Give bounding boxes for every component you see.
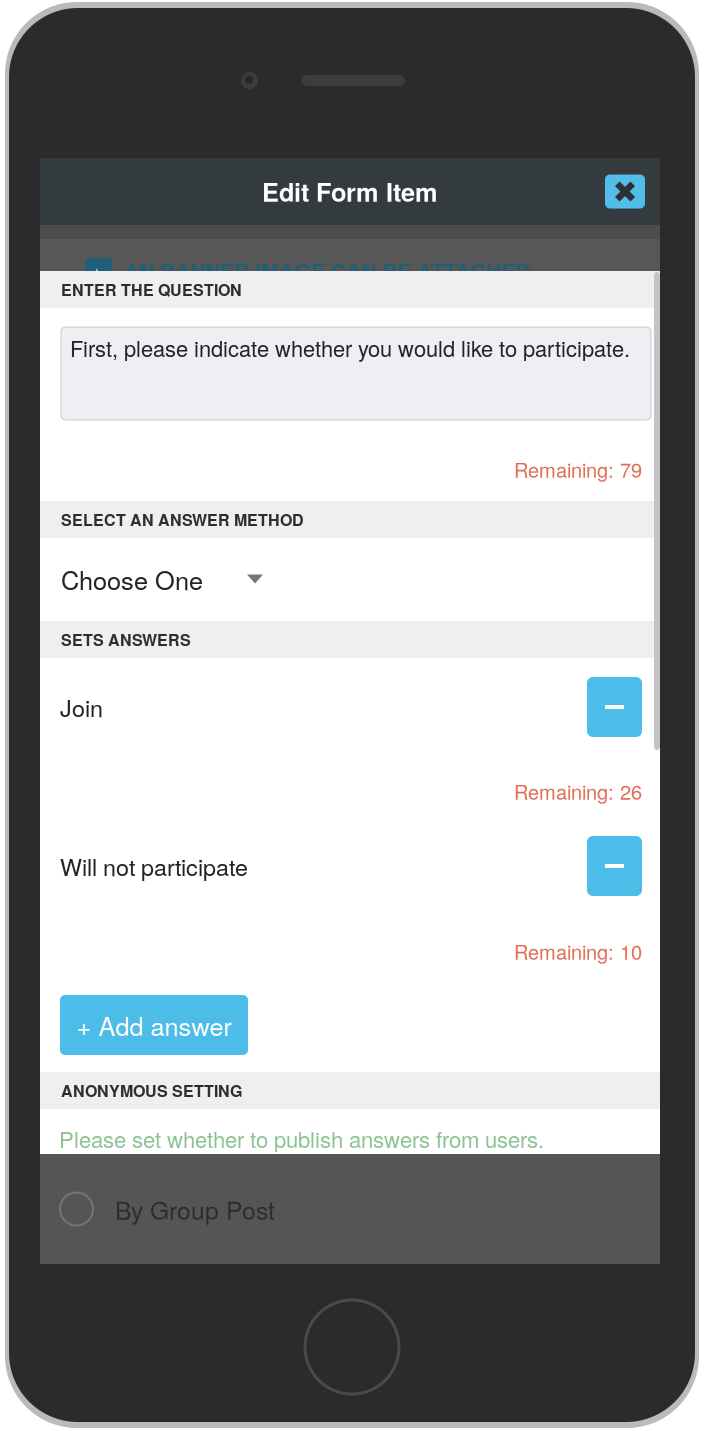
staticText: Remaining: 10 bbox=[514, 937, 642, 965]
button[interactable]: + Add answer bbox=[60, 995, 248, 1055]
button[interactable]: Remove answer bbox=[587, 677, 642, 737]
staticText: First, please indicate whether you would… bbox=[70, 332, 630, 363]
staticText: By Group Post bbox=[115, 1191, 275, 1227]
staticText: Choose One bbox=[61, 561, 203, 597]
staticText: + Add answer bbox=[76, 1007, 231, 1043]
staticText: Remaining: 79 bbox=[514, 455, 642, 483]
staticText: ANONYMOUS SETTING bbox=[61, 1079, 242, 1102]
staticText: SETS ANSWERS bbox=[61, 628, 191, 651]
staticText: Join bbox=[60, 690, 103, 724]
staticText: Remaining: 26 bbox=[514, 777, 642, 805]
staticText: AN BANNER IMAGE CAN BE ATTACHED bbox=[124, 256, 530, 286]
staticText: Please set whether to publish answers fr… bbox=[59, 1123, 544, 1154]
button[interactable]: Choose One bbox=[40, 538, 660, 620]
button[interactable]: Remove answer bbox=[587, 836, 642, 896]
staticText: ENTER THE QUESTION bbox=[61, 278, 242, 301]
staticText: Edit Form Item bbox=[262, 173, 438, 210]
button[interactable]: By Group Post bbox=[40, 1167, 660, 1251]
button[interactable]: Close bbox=[605, 174, 645, 208]
staticText: SELECT AN ANSWER METHOD bbox=[61, 508, 304, 531]
staticText: Will not participate bbox=[60, 849, 248, 883]
